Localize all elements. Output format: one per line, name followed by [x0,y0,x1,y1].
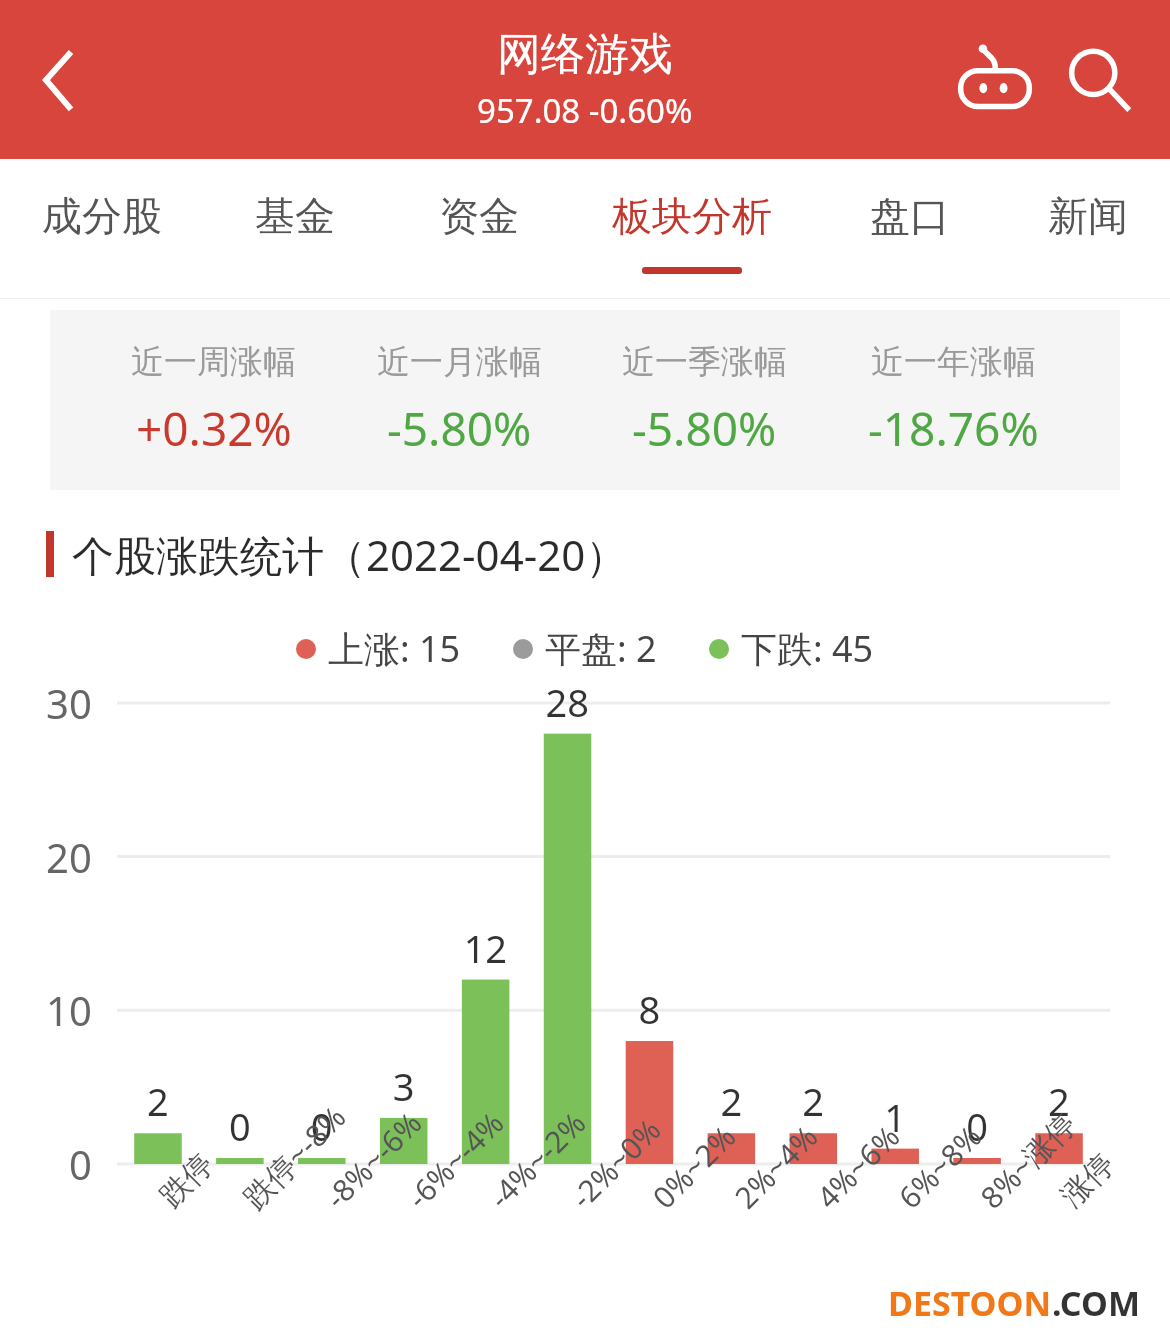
staticText: 板块分析 [612,191,772,241]
staticText: 近一年涨幅 [871,341,1036,383]
button[interactable]: 基金 [203,159,387,299]
staticText: 成分股 [42,191,162,241]
button[interactable]: Search [1044,25,1154,135]
staticText: 下跌: 45 [741,624,874,673]
staticText: 个股涨跌统计（2022-04-20） [72,526,628,583]
button[interactable]: 盘口 [813,159,1006,299]
button[interactable]: Back [0,0,120,159]
staticText: .COM [1052,1280,1140,1326]
staticText: -5.80% [632,397,777,460]
button[interactable]: 资金 [387,159,571,299]
staticText: 新闻 [1048,191,1128,241]
button[interactable]: 新闻 [1006,159,1170,299]
button[interactable]: Assistant robot [940,25,1050,135]
staticText: -5.80% [387,397,532,460]
staticText: -18.76% [868,397,1039,460]
staticText: 近一季涨幅 [622,341,787,383]
staticText: 资金 [439,191,519,241]
button[interactable]: 板块分析 [571,159,813,299]
staticText: 平盘: 2 [545,624,657,673]
staticText: 盘口 [870,191,950,241]
staticText: 近一周涨幅 [131,341,296,383]
staticText: 基金 [255,191,335,241]
button[interactable]: 成分股 [0,159,203,299]
staticText: 上涨: 15 [328,624,461,673]
staticText: +0.32% [136,397,292,460]
staticText: 网络游戏 [497,27,673,82]
staticText: 近一月涨幅 [377,341,542,383]
staticText: 957.08 -0.60% [477,88,693,133]
staticText: DESTOON [888,1280,1052,1326]
